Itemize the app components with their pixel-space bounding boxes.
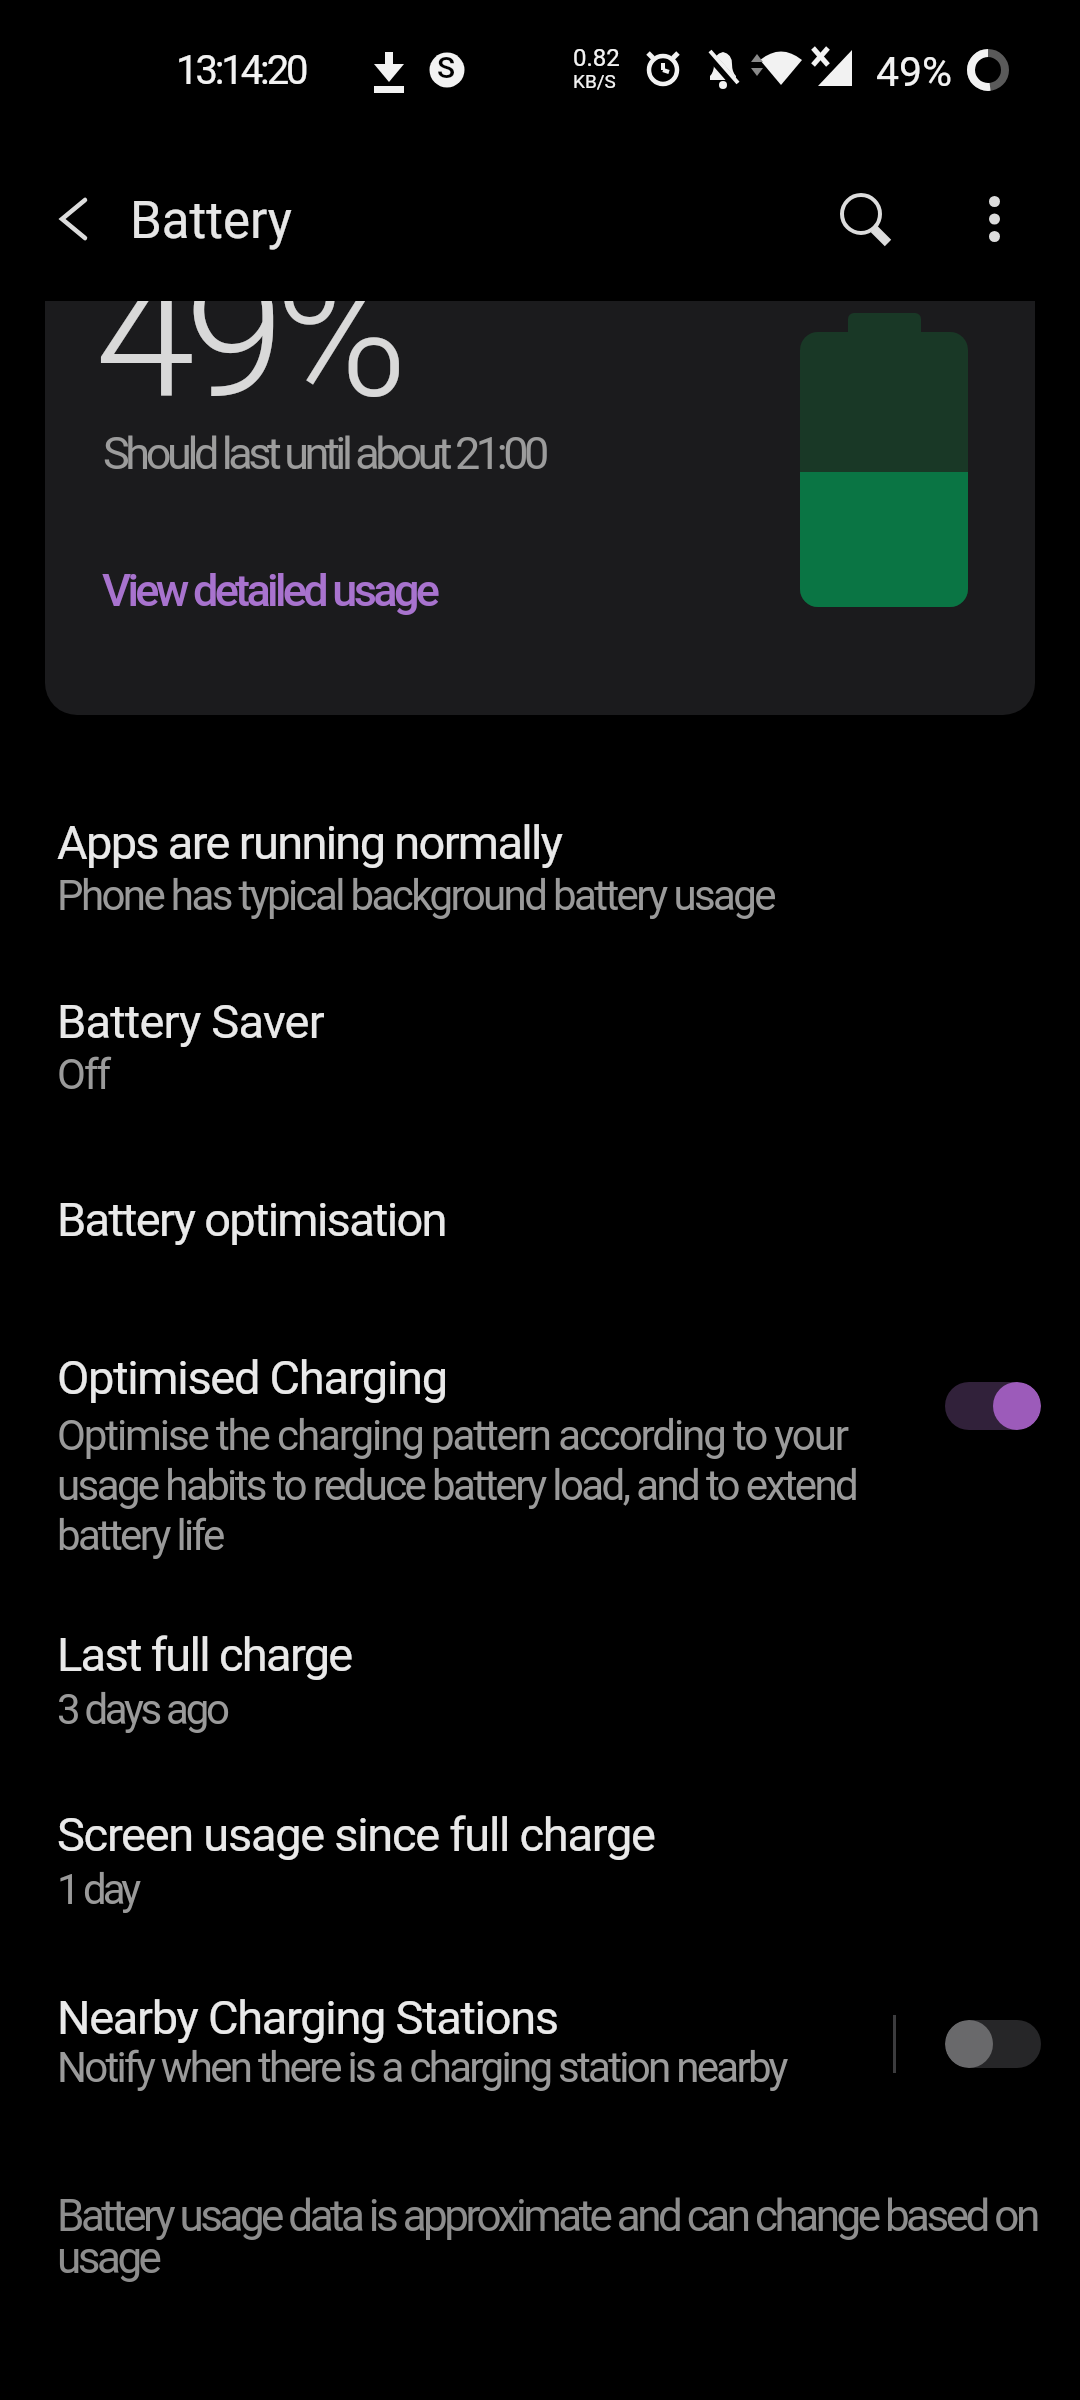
staticText: Notify when there is a charging station … xyxy=(57,2043,786,2092)
staticText: 49% xyxy=(95,301,398,439)
staticText: Battery optimisation xyxy=(57,1192,446,1247)
staticText: Apps are running normally xyxy=(57,815,562,870)
button[interactable] xyxy=(952,175,1038,261)
staticText: KB/S xyxy=(573,70,616,92)
staticText: S xyxy=(437,50,456,85)
staticText: View detailed usage xyxy=(102,564,437,617)
button[interactable]: Nearby Charging Stations xyxy=(0,1982,1080,2112)
button[interactable] xyxy=(945,2020,1041,2068)
staticText: Last full charge xyxy=(57,1627,352,1682)
staticText: usage xyxy=(57,2232,159,2284)
staticText: Battery xyxy=(130,191,292,251)
staticText: Nearby Charging Stations xyxy=(57,1990,558,2045)
button[interactable] xyxy=(30,178,110,258)
button[interactable]: Screen usage since full charge xyxy=(0,1799,1080,1929)
staticText: Should last until about 21:00 xyxy=(103,427,545,480)
staticText: 13:14:20 xyxy=(176,47,306,94)
staticText: battery life xyxy=(57,1511,223,1560)
button[interactable]: Battery optimisation xyxy=(0,1184,1080,1259)
staticText: Optimise the charging pattern according … xyxy=(57,1411,847,1460)
staticText: 49% xyxy=(876,48,953,96)
staticText: 3 days ago xyxy=(57,1685,227,1734)
button[interactable]: View detailed usage xyxy=(90,551,470,621)
staticText: 0.82 xyxy=(573,44,620,72)
staticText: Battery Saver xyxy=(57,994,324,1049)
button[interactable] xyxy=(820,175,906,261)
staticText: Battery usage data is approximate and ca… xyxy=(57,2190,1037,2242)
button[interactable]: Apps are running normally xyxy=(0,807,1080,937)
button[interactable]: Battery Saver xyxy=(0,986,1080,1116)
staticText: usage habits to reduce battery load, and… xyxy=(57,1461,857,1510)
staticText: Off xyxy=(57,1050,110,1099)
staticText: 1 day xyxy=(57,1865,138,1914)
button[interactable]: Last full charge xyxy=(0,1619,1080,1749)
staticText: Optimised Charging xyxy=(57,1350,447,1405)
staticText: Phone has typical background battery usa… xyxy=(57,871,774,920)
button[interactable]: Optimised Charging xyxy=(0,1343,1080,1593)
button[interactable] xyxy=(945,1382,1041,1430)
staticText: Screen usage since full charge xyxy=(57,1807,655,1862)
